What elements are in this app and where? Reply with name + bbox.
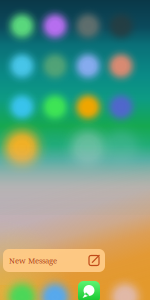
staticText: New Message: [9, 255, 57, 266]
button[interactable]: New Message: [3, 249, 105, 272]
